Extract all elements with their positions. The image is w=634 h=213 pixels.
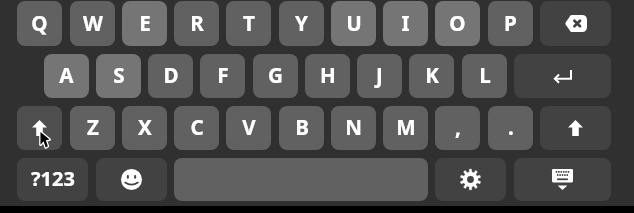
- staticText: T: [243, 9, 255, 37]
- staticText: B: [295, 113, 309, 141]
- button[interactable]: G: [253, 54, 298, 98]
- button[interactable]: Backspace: [540, 1, 611, 46]
- button[interactable]: S: [96, 54, 141, 98]
- button[interactable]: R: [174, 1, 219, 46]
- staticText: N: [345, 113, 362, 141]
- button[interactable]: X: [122, 106, 167, 150]
- button[interactable]: U: [331, 1, 376, 46]
- button[interactable]: Shift: [17, 106, 62, 150]
- button[interactable]: W: [70, 1, 115, 46]
- button[interactable]: ,: [435, 106, 480, 150]
- button[interactable]: D: [148, 54, 193, 98]
- staticText: U: [346, 9, 362, 37]
- staticText: O: [449, 9, 466, 37]
- staticText: W: [83, 9, 103, 37]
- button[interactable]: Space: [174, 158, 428, 201]
- button[interactable]: C: [174, 106, 219, 150]
- staticText: Y: [295, 9, 308, 37]
- button[interactable]: M: [383, 106, 428, 150]
- staticText: J: [376, 61, 383, 89]
- button[interactable]: V: [226, 106, 271, 150]
- button[interactable]: B: [279, 106, 324, 150]
- staticText: F: [217, 61, 229, 89]
- staticText: X: [138, 113, 152, 141]
- button[interactable]: E: [122, 1, 167, 46]
- button[interactable]: L: [462, 54, 507, 98]
- staticText: ?123: [31, 165, 75, 192]
- staticText: H: [320, 61, 336, 89]
- staticText: R: [190, 9, 204, 37]
- button[interactable]: Hide keyboard: [514, 158, 611, 201]
- button[interactable]: H: [305, 54, 350, 98]
- button[interactable]: Z: [70, 106, 115, 150]
- button[interactable]: O: [435, 1, 480, 46]
- button[interactable]: Settings: [435, 158, 506, 201]
- staticText: A: [59, 61, 74, 89]
- staticText: Z: [87, 113, 99, 141]
- staticText: ,: [455, 113, 461, 141]
- staticText: Q: [31, 9, 48, 37]
- staticText: E: [139, 9, 151, 37]
- staticText: D: [163, 61, 179, 89]
- staticText: L: [479, 61, 491, 89]
- staticText: V: [242, 113, 256, 141]
- staticText: P: [504, 9, 517, 37]
- button[interactable]: ?123: [17, 158, 88, 201]
- staticText: G: [268, 61, 283, 89]
- staticText: I: [401, 9, 410, 37]
- button[interactable]: I: [383, 1, 428, 46]
- button[interactable]: A: [44, 54, 89, 98]
- button[interactable]: T: [226, 1, 271, 46]
- button[interactable]: Emoji: [96, 158, 167, 201]
- button[interactable]: .: [488, 106, 533, 150]
- button[interactable]: J: [357, 54, 402, 98]
- button[interactable]: Shift: [540, 106, 611, 150]
- button[interactable]: Q: [17, 1, 62, 46]
- button[interactable]: Y: [279, 1, 324, 46]
- staticText: M: [396, 113, 416, 141]
- button[interactable]: P: [488, 1, 533, 46]
- button[interactable]: K: [409, 54, 454, 98]
- staticText: C: [190, 113, 204, 141]
- staticText: .: [508, 113, 514, 141]
- button[interactable]: F: [200, 54, 245, 98]
- staticText: K: [425, 61, 439, 89]
- button[interactable]: N: [331, 106, 376, 150]
- button[interactable]: Enter: [514, 54, 611, 98]
- staticText: S: [113, 61, 125, 89]
